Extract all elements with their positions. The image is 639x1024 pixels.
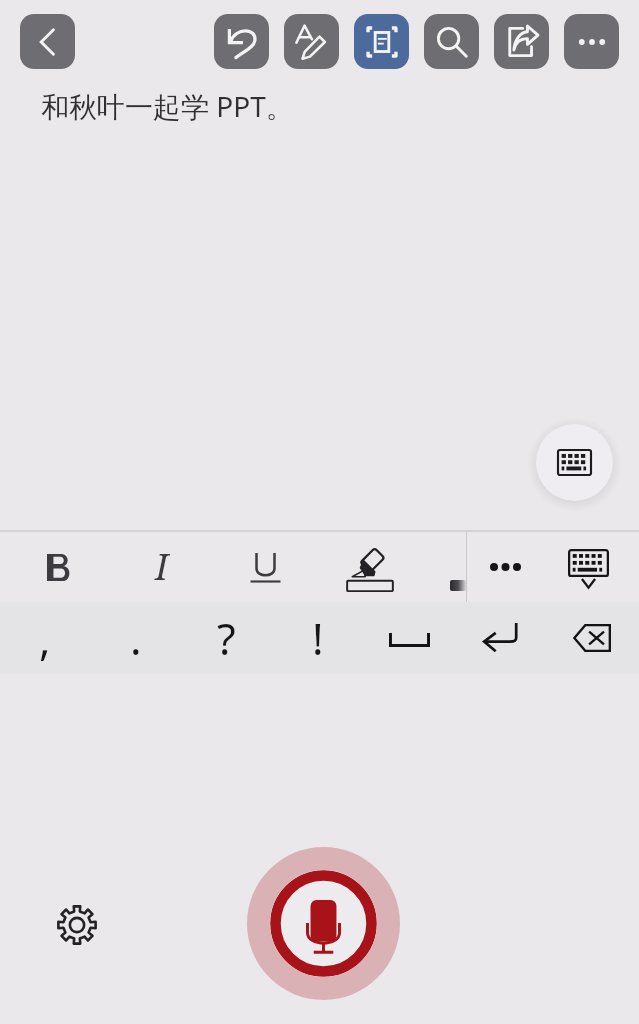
button[interactable] xyxy=(228,532,303,602)
button[interactable]: More options xyxy=(564,14,619,69)
button[interactable]: Search xyxy=(424,14,479,69)
staticText: 和秋叶一起学 PPT。 xyxy=(41,87,294,125)
button[interactable]: Undo xyxy=(214,14,269,69)
staticText: ? xyxy=(217,609,236,668)
button[interactable]: I xyxy=(124,532,199,602)
button[interactable]: Show keyboard xyxy=(536,424,613,501)
button[interactable]: , xyxy=(3,602,87,674)
button[interactable]: Settings xyxy=(46,894,107,955)
button[interactable] xyxy=(21,532,96,602)
button[interactable] xyxy=(332,532,407,602)
button[interactable]: Backspace xyxy=(549,602,633,674)
button[interactable]: ? xyxy=(184,602,268,674)
button[interactable]: Edit text xyxy=(284,14,339,69)
button[interactable]: Enter xyxy=(458,602,542,674)
button[interactable]: Share xyxy=(494,14,549,69)
button[interactable]: Back xyxy=(20,14,75,69)
staticText: ! xyxy=(312,609,324,668)
button[interactable]: Space xyxy=(367,602,451,674)
staticText: I xyxy=(155,542,169,591)
button[interactable] xyxy=(468,532,543,602)
button[interactable]: Scan document xyxy=(354,14,409,69)
button[interactable]: Voice input xyxy=(247,847,400,1000)
button[interactable] xyxy=(551,532,626,602)
staticText: . xyxy=(130,609,142,668)
button[interactable]: ! xyxy=(276,602,360,674)
button[interactable]: . xyxy=(94,602,178,674)
staticText: , xyxy=(39,609,51,668)
